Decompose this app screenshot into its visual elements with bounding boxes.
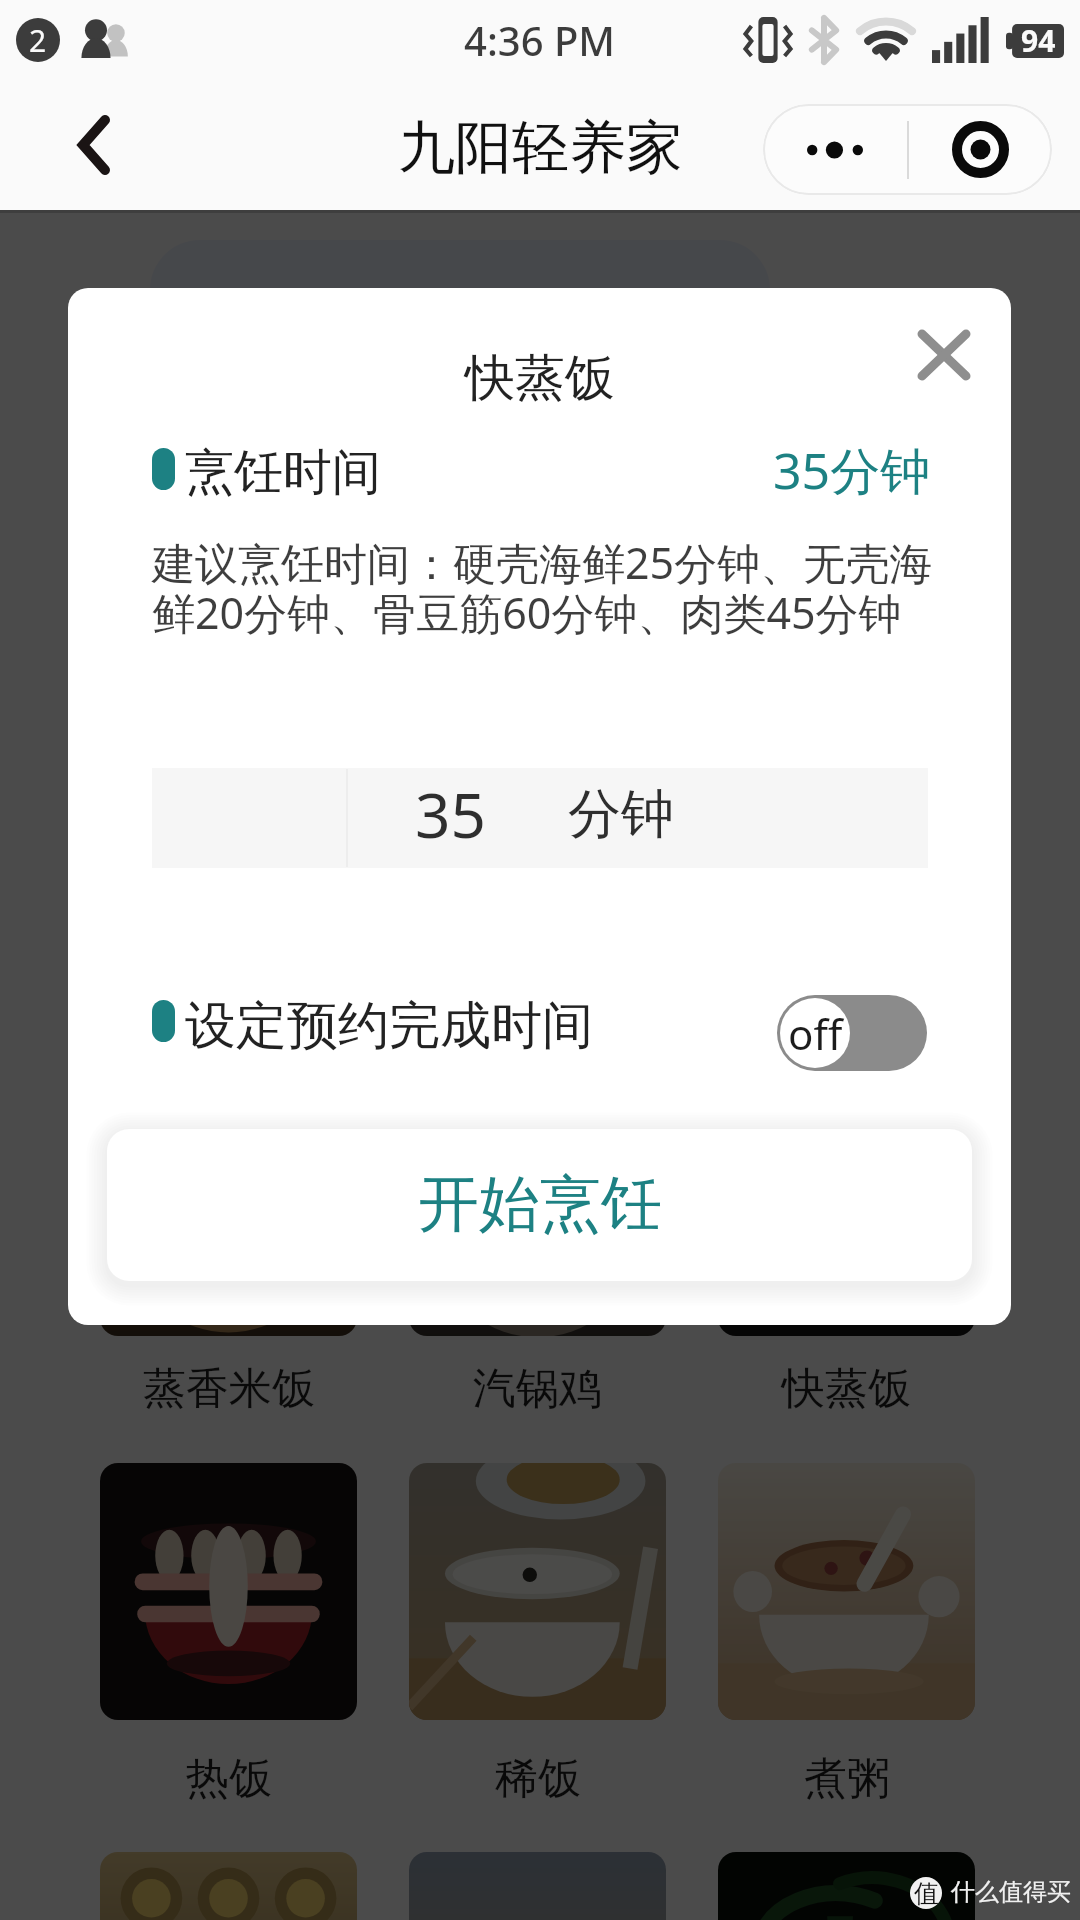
staticText: 4:36 PM (464, 13, 616, 67)
staticText: 设定预约完成时间 (185, 994, 593, 1058)
staticText: 开始烹饪 (418, 1166, 662, 1243)
staticText: 分钟 (568, 781, 674, 848)
staticText: 94 (1021, 20, 1056, 61)
staticText: 什么值得买 (951, 1877, 1071, 1907)
button[interactable]: 开始烹饪 (107, 1129, 972, 1281)
button[interactable]: 煮粥 (718, 1748, 975, 1810)
button[interactable]: 煮粥 (718, 1463, 975, 1720)
button[interactable]: 蒸香米饭 (100, 1358, 357, 1420)
button[interactable]: Close mini program (909, 104, 1052, 195)
staticText: 九阳轻养家 (398, 112, 683, 184)
staticText: 稀饭 (495, 1752, 581, 1806)
button[interactable]: 快蒸饭 (718, 1358, 975, 1420)
button[interactable]: Close (894, 305, 994, 405)
button[interactable]: 汽锅鸡 (409, 1358, 666, 1420)
button[interactable]: 快蒸饭 (718, 1079, 975, 1336)
staticText: 蒸香米饭 (143, 1362, 315, 1416)
staticText: 35分钟 (773, 436, 931, 504)
staticText: 值 (914, 1878, 939, 1909)
button[interactable]: 稀饭 (409, 1463, 666, 1720)
button[interactable]: 蒸鸡蛋羹 (100, 1852, 357, 1920)
button[interactable]: 煲汤 (718, 1852, 975, 1920)
staticText: 热饭 (186, 1752, 272, 1806)
staticText: 35 (415, 772, 486, 856)
staticText: 煮粥 (804, 1752, 890, 1806)
button[interactable]: 稀饭 (409, 1748, 666, 1810)
button[interactable]: 热饭 (100, 1463, 357, 1720)
staticText: 汽锅鸡 (473, 1362, 602, 1416)
button[interactable]: 热饭 (100, 1748, 357, 1810)
button[interactable]: Toggle scheduled finish time (777, 995, 927, 1071)
staticText: 烹饪时间 (185, 442, 381, 504)
button[interactable]: 蒸香米饭 (100, 1079, 357, 1336)
staticText: off (788, 1005, 843, 1062)
button[interactable]: Back (51, 102, 137, 188)
staticText: 快蒸饭 (782, 1362, 911, 1416)
staticText: 建议烹饪时间：硬壳海鲜25分钟、无壳海 鲜20分钟、骨豆筋60分钟、肉类45分钟 (152, 533, 952, 642)
button[interactable]: 汽锅鸡 (409, 1079, 666, 1336)
staticText: 2 (29, 20, 47, 61)
button[interactable]: More options (763, 104, 907, 195)
staticText: 快蒸饭 (465, 347, 615, 410)
